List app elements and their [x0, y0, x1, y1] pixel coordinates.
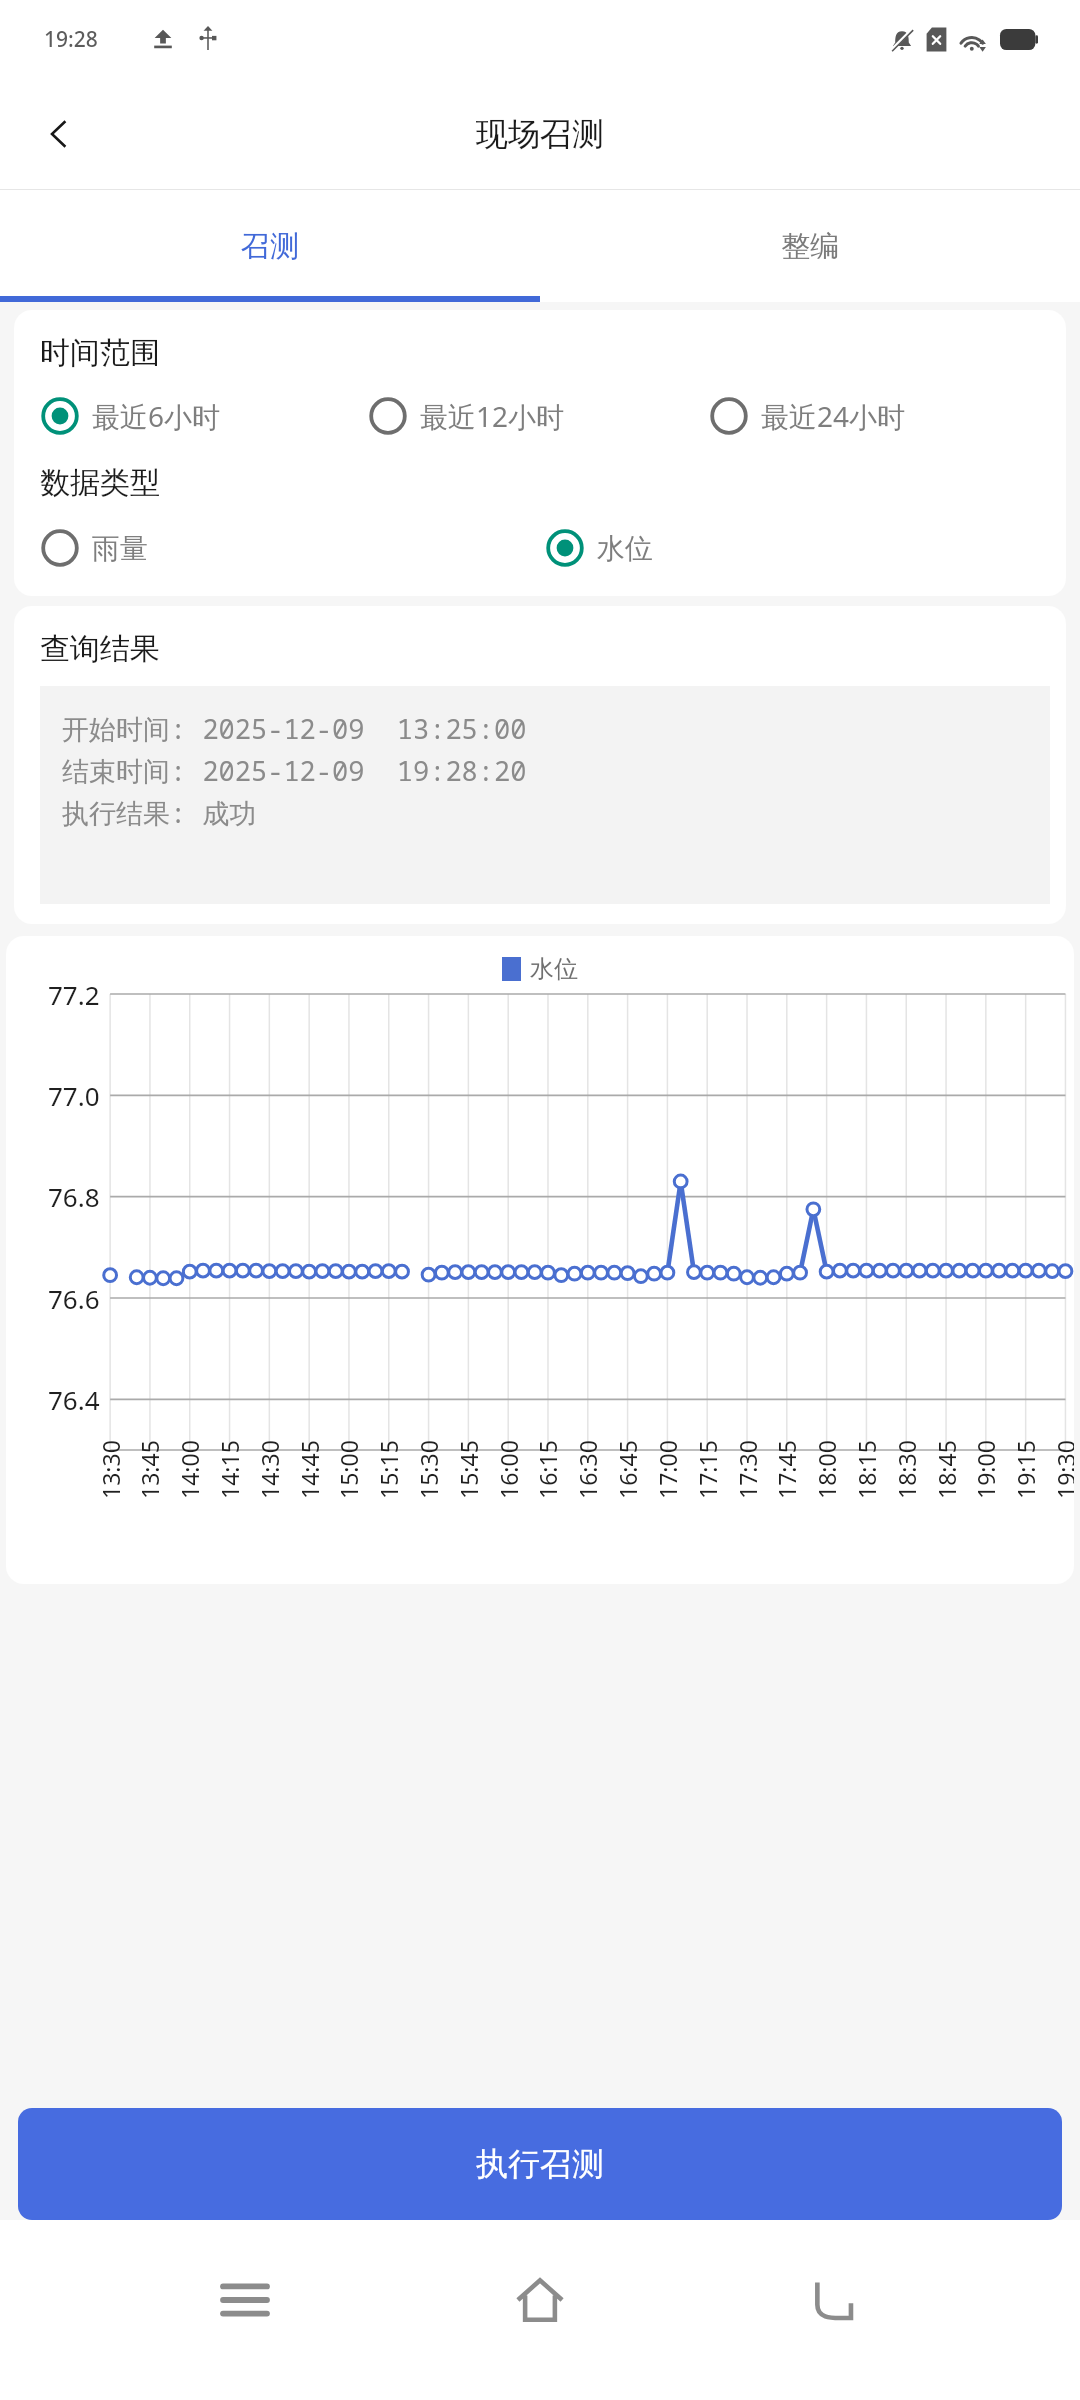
staticText: 17:45 [771, 1440, 802, 1499]
button[interactable]: 执行召测 [18, 2108, 1062, 2220]
staticText: 76.8 [48, 1179, 100, 1214]
staticText: 15:15 [373, 1440, 404, 1499]
staticText: 19:00 [970, 1440, 1001, 1499]
staticText: 18:45 [931, 1440, 962, 1499]
staticText: 77.0 [48, 1078, 100, 1113]
staticText: 76.4 [48, 1382, 100, 1417]
staticText: 最近12小时 [420, 397, 565, 435]
button[interactable]: Home [490, 2250, 590, 2350]
staticText: 水位 [597, 531, 653, 566]
staticText: 14:00 [174, 1440, 205, 1499]
staticText: 77.2 [48, 977, 100, 1012]
staticText: 17:00 [652, 1440, 683, 1499]
staticText: 开始时间: 2025-12-09 13:25:00 [62, 710, 527, 747]
button[interactable]: Back [785, 2250, 885, 2350]
staticText: 时间范围 [40, 334, 160, 372]
staticText: 15:30 [413, 1440, 444, 1499]
button[interactable]: 最近12小时 [368, 396, 709, 436]
staticText: 现场召测 [476, 114, 604, 154]
staticText: 最近24小时 [761, 397, 906, 435]
button[interactable]: Back [20, 95, 98, 173]
staticText: 17:30 [732, 1440, 763, 1499]
staticText: 雨量 [92, 531, 148, 566]
staticText: 16:00 [493, 1440, 524, 1499]
button[interactable]: 水位 [545, 528, 1050, 568]
staticText: 18:15 [851, 1440, 882, 1499]
staticText: 14:15 [214, 1440, 245, 1499]
staticText: 数据类型 [40, 464, 160, 502]
staticText: 召测 [241, 228, 299, 265]
staticText: 17:15 [692, 1440, 723, 1499]
staticText: 19:30 [1050, 1440, 1074, 1499]
staticText: 水位 [530, 954, 578, 984]
staticText: 13:45 [134, 1440, 165, 1499]
staticText: 16:30 [572, 1440, 603, 1499]
button[interactable]: 最近6小时 [40, 396, 368, 436]
staticText: 18:30 [891, 1440, 922, 1499]
staticText: 16:45 [612, 1440, 643, 1499]
staticText: 执行结果: 成功 [62, 794, 257, 831]
button[interactable]: 雨量 [40, 528, 545, 568]
button[interactable]: 召测 [0, 190, 540, 302]
staticText: 14:30 [254, 1440, 285, 1499]
button[interactable]: 最近24小时 [709, 396, 1050, 436]
staticText: 19:15 [1010, 1440, 1041, 1499]
staticText: 查询结果 [40, 630, 160, 668]
staticText: 15:45 [453, 1440, 484, 1499]
staticText: 76.6 [48, 1281, 100, 1316]
staticText: 最近6小时 [92, 397, 221, 435]
staticText: 执行召测 [476, 2144, 604, 2184]
staticText: 18:00 [811, 1440, 842, 1499]
staticText: 整编 [781, 228, 839, 265]
staticText: 14:45 [294, 1440, 325, 1499]
staticText: 19:28 [44, 25, 98, 54]
staticText: 13:30 [95, 1440, 126, 1499]
staticText: 15:00 [333, 1440, 364, 1499]
staticText: 16:15 [532, 1440, 563, 1499]
staticText: 结束时间: 2025-12-09 19:28:20 [62, 752, 527, 789]
button[interactable]: Recent apps [195, 2250, 295, 2350]
button[interactable]: 整编 [540, 190, 1080, 302]
